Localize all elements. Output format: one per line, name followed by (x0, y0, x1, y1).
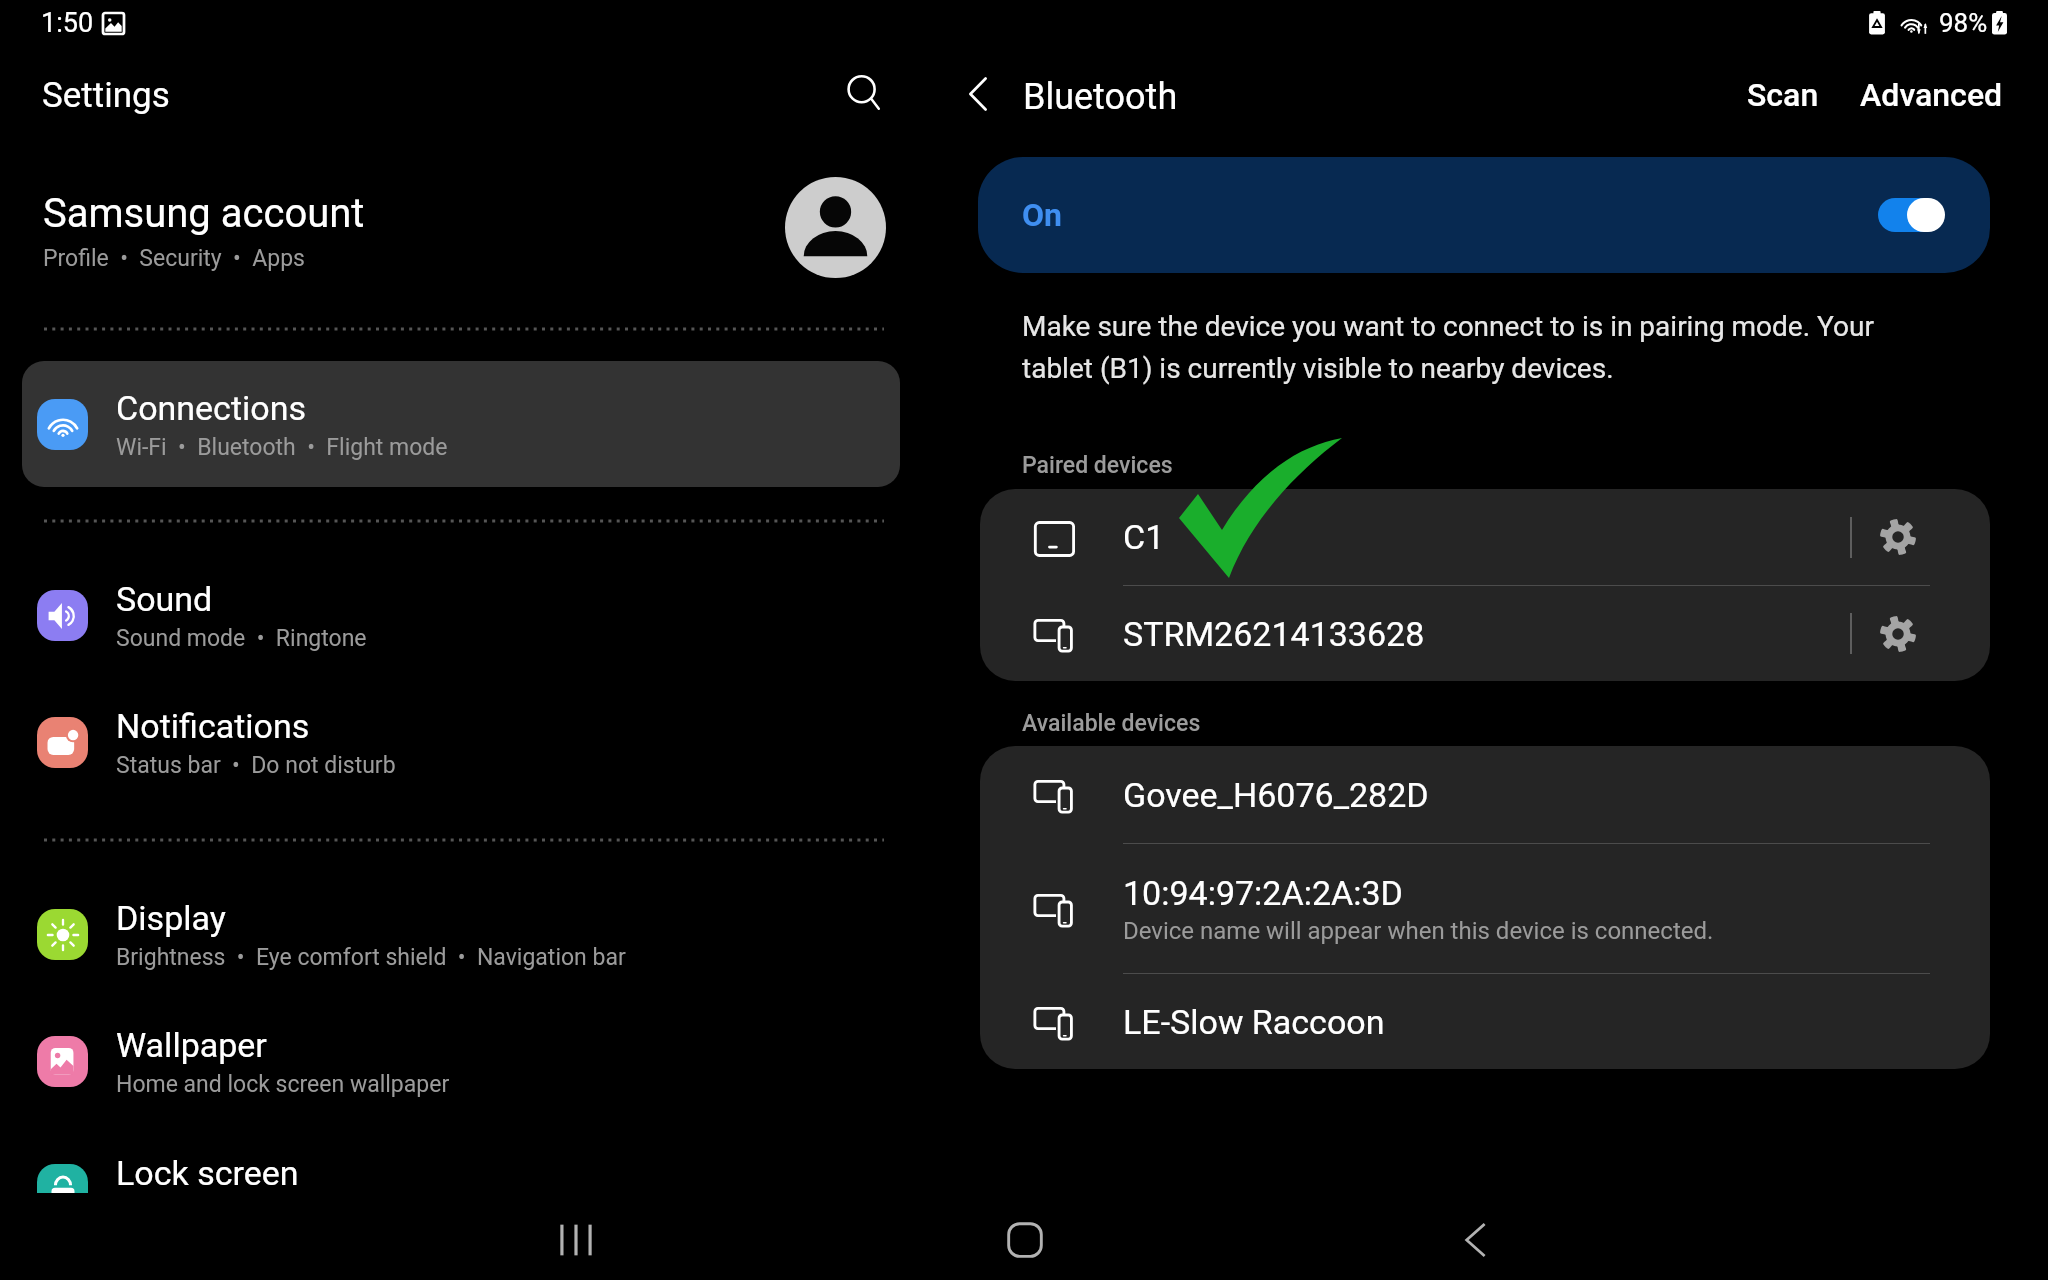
staticText: Scan (1747, 76, 1819, 114)
staticText: Advanced (1860, 76, 2003, 114)
staticText: Govee_H6076_282D (1123, 775, 1429, 815)
staticText: 10:94:97:2A:2A:3D (1123, 873, 1403, 913)
staticText: Sound (116, 579, 213, 619)
button[interactable]: Back (1429, 1205, 1519, 1275)
staticText: STRM26214133628 (1123, 614, 1425, 654)
staticText: Wi-Fi • Bluetooth • Flight mode (116, 434, 448, 461)
button[interactable]: Scan (1735, 64, 1831, 126)
staticText: Device name will appear when this device… (1123, 917, 1714, 945)
staticText: Samsung account (43, 190, 365, 237)
button[interactable]: Display (0, 871, 900, 997)
staticText: Available devices (1022, 710, 1201, 737)
button[interactable]: Device settings (1852, 586, 1944, 681)
button[interactable]: On (978, 157, 1990, 273)
staticText: Connections (116, 388, 307, 428)
staticText: Sound mode • Ringtone (116, 625, 367, 652)
button[interactable]: Samsung account (0, 163, 930, 299)
staticText: Notifications (116, 706, 310, 746)
staticText: Bluetooth (1023, 76, 1178, 118)
staticText: 98% (1939, 8, 1988, 38)
staticText: Display (116, 898, 226, 938)
button[interactable]: Home (980, 1205, 1070, 1275)
button[interactable]: 10:94:97:2A:2A:3D (980, 844, 1990, 973)
staticText: Settings (42, 75, 170, 116)
button[interactable]: Sound (0, 552, 900, 678)
button[interactable]: Device settings (1852, 489, 1944, 585)
button[interactable]: Notifications (0, 679, 900, 805)
button[interactable]: Wallpaper (0, 998, 900, 1124)
staticText: C1 (1123, 517, 1165, 557)
button[interactable]: Back (960, 60, 995, 128)
staticText: Wallpaper (116, 1025, 267, 1065)
staticText: Profile • Security • Apps (43, 245, 305, 272)
button[interactable]: Search (830, 58, 898, 126)
staticText: Paired devices (1022, 452, 1173, 479)
button[interactable]: STRM26214133628 (980, 586, 1990, 681)
staticText: Brightness • Eye comfort shield • Naviga… (116, 944, 626, 971)
button[interactable]: Connections (22, 361, 900, 487)
staticText: On (1022, 196, 1063, 234)
button[interactable]: Govee_H6076_282D (980, 746, 1990, 843)
staticText: 1:50 (41, 7, 94, 39)
button[interactable]: Advanced (1848, 64, 2015, 126)
button[interactable]: Recents (531, 1205, 621, 1275)
staticText: Home and lock screen wallpaper (116, 1071, 450, 1098)
staticText: Make sure the device you want to connect… (1022, 310, 1982, 385)
button[interactable]: LE-Slow Raccoon (980, 974, 1990, 1069)
staticText: Lock screen (116, 1153, 299, 1193)
button[interactable]: C1 (980, 489, 1990, 585)
staticText: Status bar • Do not disturb (116, 752, 396, 779)
staticText: LE-Slow Raccoon (1123, 1002, 1385, 1042)
button[interactable]: Lock screen (0, 1126, 900, 1193)
